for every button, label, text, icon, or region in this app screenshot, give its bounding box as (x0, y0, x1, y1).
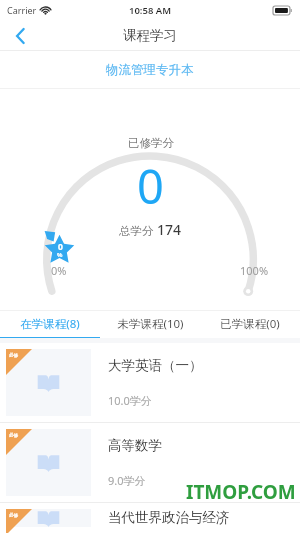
staticText: 高等数学 (108, 437, 162, 454)
staticText: Carrier (7, 4, 37, 16)
staticText: 174 (157, 220, 182, 239)
button[interactable]: 必修 (0, 343, 300, 422)
staticText: 大学英语（一） (108, 357, 203, 374)
button[interactable]: 必修 (0, 503, 300, 533)
staticText: 10:58 AM (129, 4, 172, 17)
staticText: 总学分 (119, 223, 157, 239)
staticText: 在学课程(8) (20, 316, 80, 332)
staticText: 已修学分 (128, 136, 174, 150)
button[interactable]: Back (0, 20, 40, 51)
button[interactable]: 必修 (0, 423, 300, 502)
staticText: 0 (137, 154, 164, 218)
button[interactable]: 未学课程(10) (100, 311, 200, 337)
staticText: 课程学习 (123, 27, 177, 44)
staticText: ITMOP.COM (186, 479, 296, 505)
staticText: 已学课程(0) (220, 316, 280, 332)
staticText: 必修 (9, 353, 18, 359)
button[interactable]: 已学课程(0) (200, 311, 300, 337)
staticText: 必修 (9, 513, 18, 519)
staticText: 0% (51, 263, 67, 278)
staticText: 9.0学分 (108, 473, 146, 488)
button[interactable]: 在学课程(8) (0, 311, 100, 337)
staticText: % (57, 251, 63, 259)
staticText: 100% (240, 263, 269, 278)
staticText: 0 (58, 241, 63, 253)
staticText: 物流管理专升本 (106, 62, 194, 78)
staticText: 当代世界政治与经济 (108, 509, 230, 526)
staticText: 未学课程(10) (117, 316, 184, 332)
staticText: 必修 (9, 433, 18, 439)
staticText: 10.0学分 (108, 393, 152, 408)
